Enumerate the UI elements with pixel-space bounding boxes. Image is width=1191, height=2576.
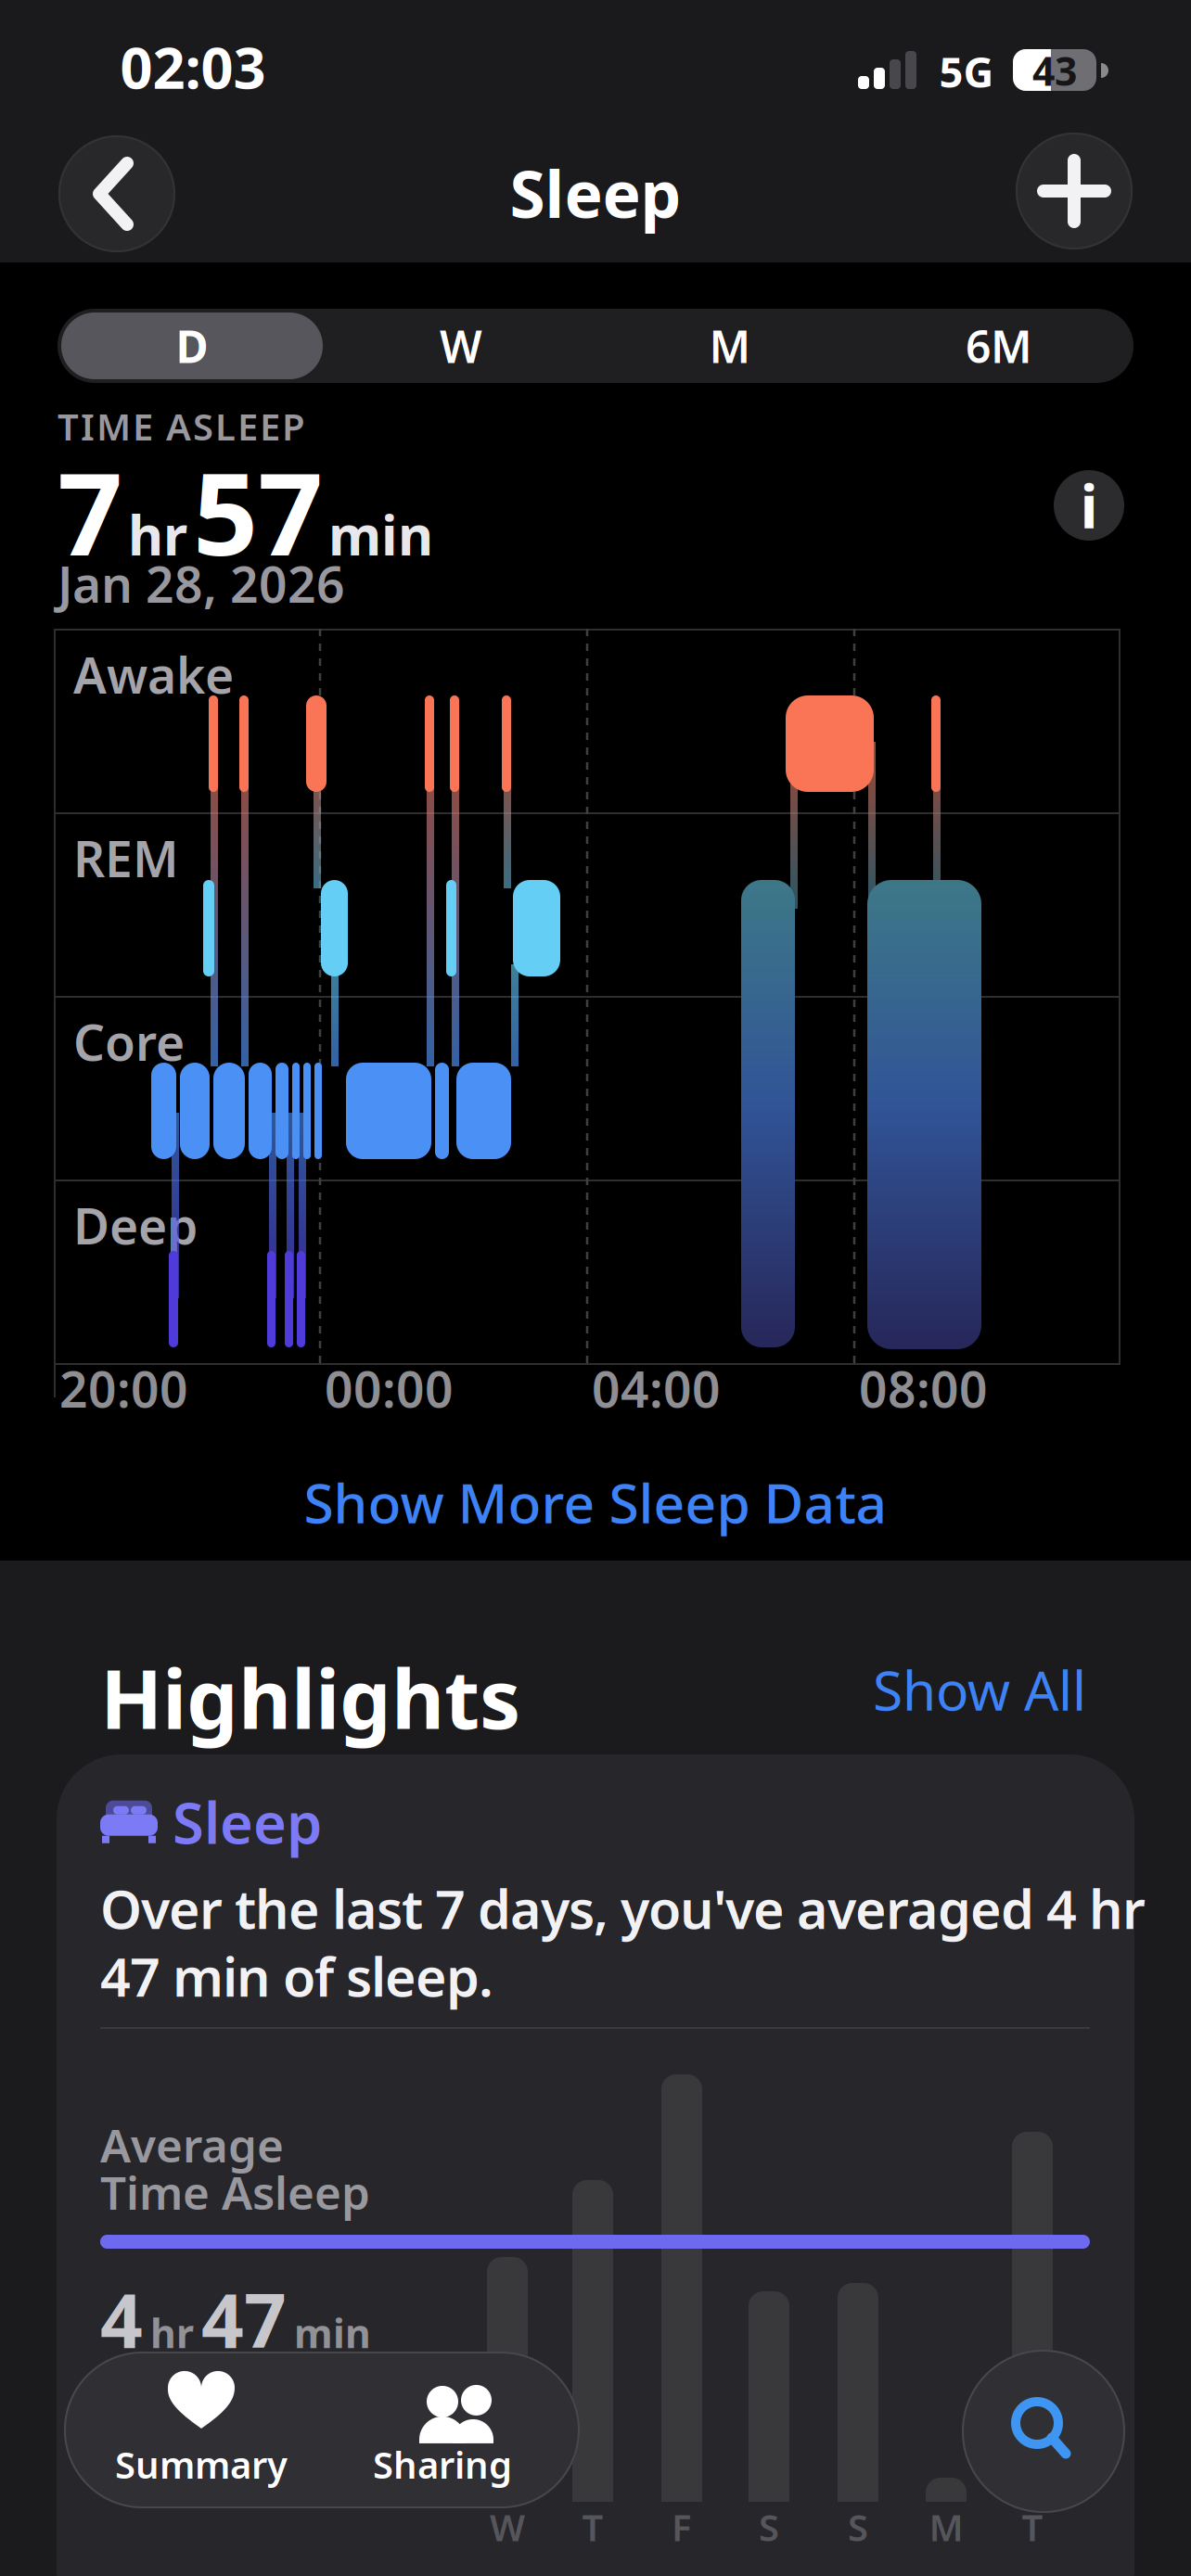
staticText: Highlights <box>100 1643 520 1752</box>
staticText: min <box>328 498 433 570</box>
button[interactable]: W <box>327 309 595 383</box>
staticText: Show More Sleep Data <box>304 1466 887 1538</box>
staticText: 47 <box>201 2270 287 2368</box>
staticText: Sleep <box>510 150 681 236</box>
staticText: 47 min of sleep. <box>100 1941 493 2011</box>
button[interactable]: W <box>57 1754 1134 2576</box>
staticText: Over the last 7 days, you've averaged 4 … <box>100 1873 1146 1944</box>
staticText: W <box>490 2502 525 2551</box>
button[interactable]: Back <box>58 135 175 252</box>
staticText: i <box>1080 466 1098 545</box>
staticText: 43 <box>1032 44 1077 97</box>
staticText: 00:00 <box>325 1356 454 1421</box>
staticText: W <box>440 316 482 375</box>
staticText: 5G <box>939 43 994 99</box>
staticText: Core <box>73 1009 185 1075</box>
staticText: S <box>848 2502 868 2551</box>
staticText: M <box>929 2502 963 2551</box>
staticText: Sleep <box>173 1784 322 1860</box>
button[interactable]: M <box>595 309 864 383</box>
staticText: TIME ASLEEP <box>58 402 305 451</box>
staticText: Summary <box>115 2440 288 2489</box>
staticText: hr <box>128 498 187 570</box>
staticText: S <box>759 2502 779 2551</box>
staticText: 6M <box>966 316 1032 375</box>
button[interactable]: Info <box>1054 470 1124 541</box>
button[interactable]: Sharing <box>322 2352 563 2508</box>
staticText: min <box>294 2306 371 2359</box>
staticText: T <box>1022 2502 1043 2551</box>
button[interactable]: Summary <box>81 2352 322 2508</box>
staticText: hr <box>150 2306 194 2359</box>
button[interactable]: Add Data <box>1016 133 1133 249</box>
button[interactable]: Show All <box>873 1653 1086 1726</box>
staticText: Sharing <box>373 2440 512 2489</box>
staticText: 20:00 <box>59 1356 188 1421</box>
staticText: 08:00 <box>859 1356 988 1421</box>
button[interactable]: D <box>58 309 327 383</box>
button[interactable]: Search <box>962 2350 1125 2513</box>
staticText: 02:03 <box>120 29 266 105</box>
staticText: D <box>176 316 208 375</box>
staticText: Show All <box>873 1653 1086 1726</box>
button[interactable]: 6M <box>864 309 1133 383</box>
staticText: Average <box>100 2114 284 2175</box>
staticText: 04:00 <box>592 1356 721 1421</box>
staticText: Deep <box>73 1192 198 1258</box>
staticText: T <box>582 2502 603 2551</box>
staticText: Awake <box>73 642 234 707</box>
staticText: 57 <box>193 436 323 587</box>
staticText: M <box>709 316 751 375</box>
staticText: Jan 28, 2026 <box>58 551 345 616</box>
staticText: F <box>672 2502 692 2551</box>
staticText: 4 <box>100 2270 143 2368</box>
button[interactable]: Show More Sleep Data <box>304 1466 887 1538</box>
staticText: Time Asleep <box>100 2162 370 2222</box>
staticText: REM <box>73 825 179 891</box>
staticText: 7 <box>58 436 122 587</box>
